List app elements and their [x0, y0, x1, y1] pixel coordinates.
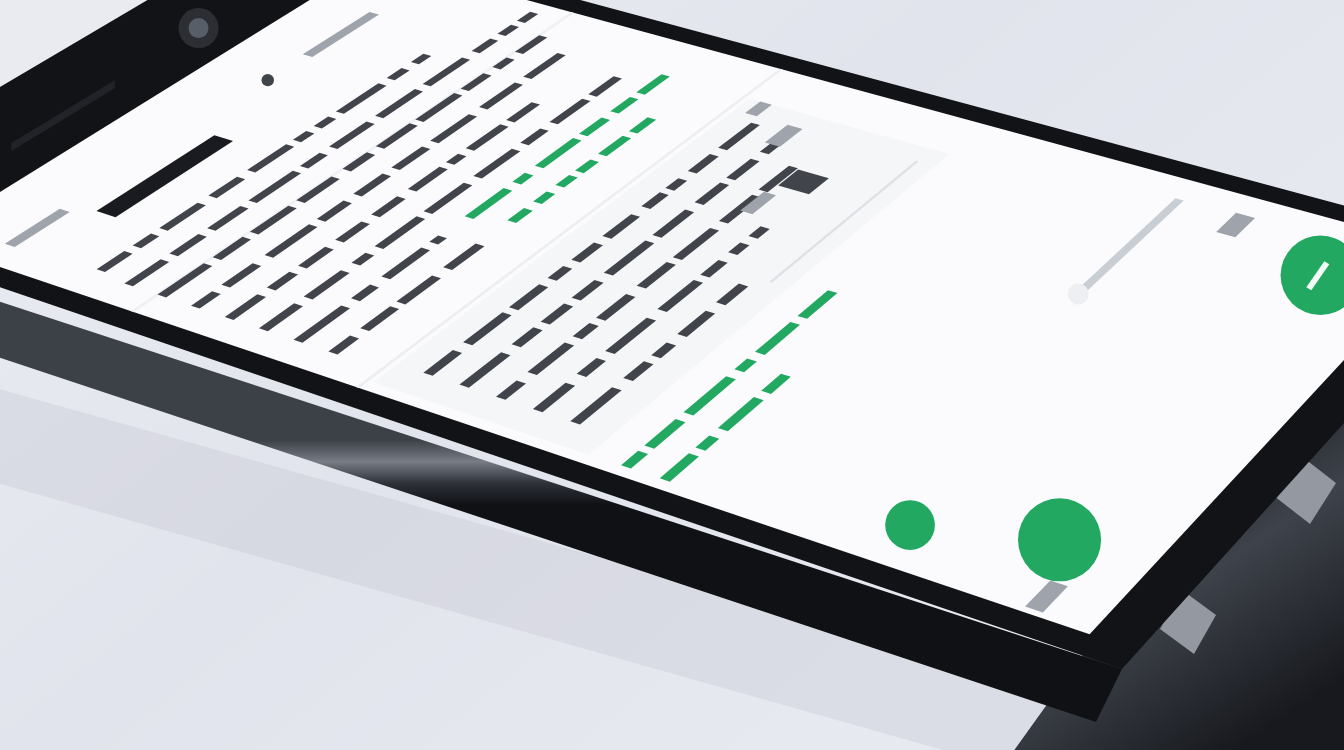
- button[interactable]: OPPO phone showing app screen: [0, 0, 1344, 750]
